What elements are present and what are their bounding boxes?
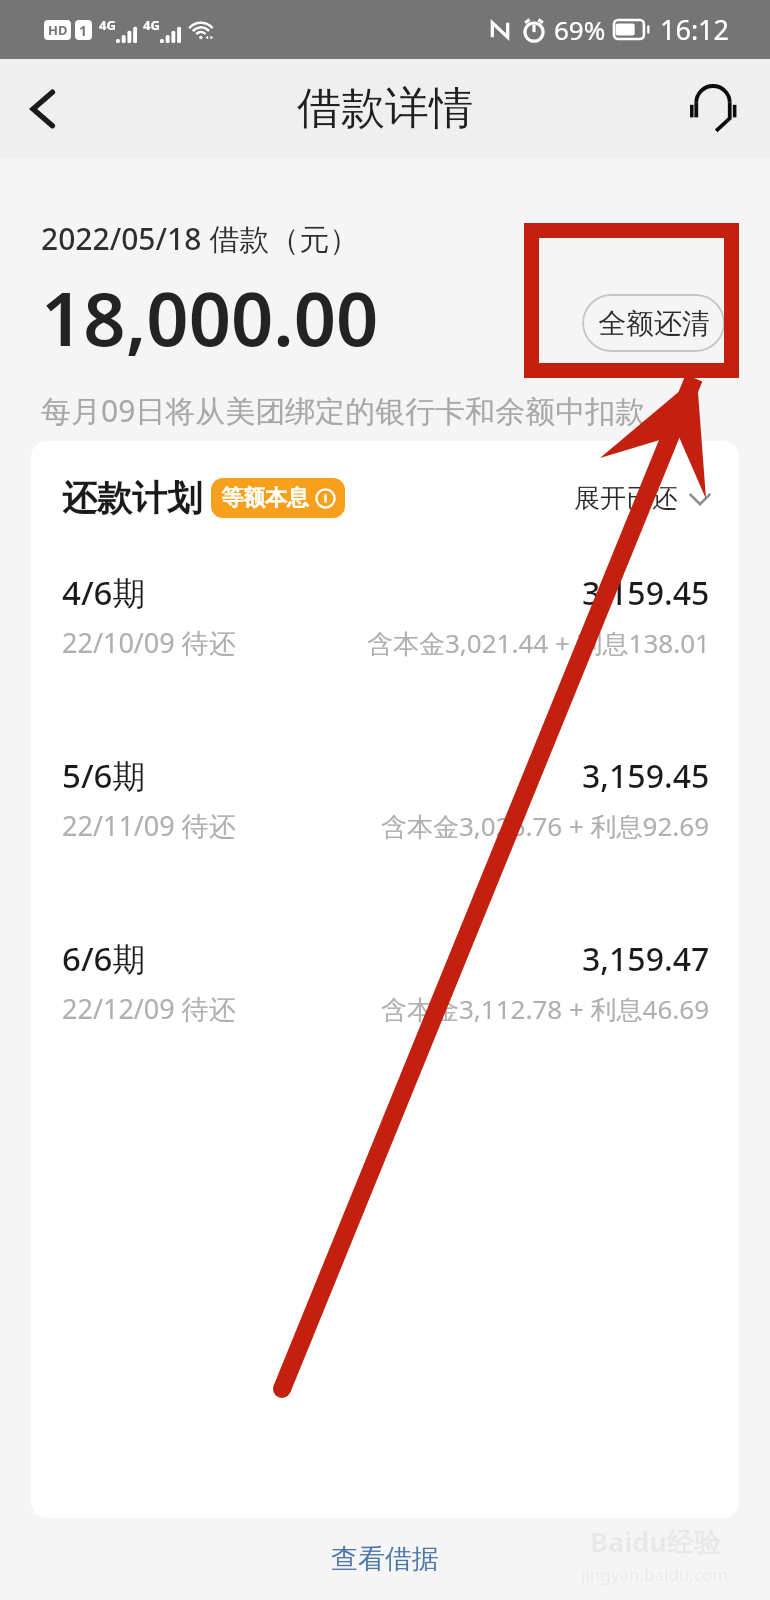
staticText: 3,159.47 xyxy=(582,937,710,981)
staticText: Baidu经验 xyxy=(590,1523,721,1560)
staticText: 69% xyxy=(554,12,606,47)
staticText: 还款计划 xyxy=(62,476,202,520)
button[interactable]: 6/6期 xyxy=(31,936,739,1027)
staticText: 查看借据 xyxy=(331,1542,439,1576)
staticText: 4G xyxy=(99,16,116,34)
staticText: 6/6期 xyxy=(62,936,146,981)
button[interactable]: Customer service xyxy=(673,69,753,149)
button[interactable]: 查看借据 xyxy=(309,1532,461,1586)
button[interactable]: 5/6期 xyxy=(31,753,739,844)
staticText: 含本金3,112.78 + 利息46.69 xyxy=(381,991,710,1027)
staticText: 22/11/09 待还 xyxy=(62,807,236,844)
button[interactable]: 全额还清 xyxy=(582,294,725,352)
staticText: 每月09日将从美团绑定的银行卡和余额中扣款 xyxy=(41,390,646,431)
staticText: 含本金3,026.76 + 利息92.69 xyxy=(381,808,710,844)
staticText: 4G xyxy=(143,16,160,34)
staticText: 16:12 xyxy=(660,11,730,48)
staticText: jingyan.baidu.com xyxy=(581,1563,729,1586)
button[interactable]: Back xyxy=(0,65,88,153)
staticText: 全额还清 xyxy=(598,306,710,341)
staticText: 3,159.45 xyxy=(582,754,710,798)
staticText: 3,159.45 xyxy=(582,571,710,615)
staticText: 展开已还 xyxy=(574,482,678,515)
staticText: 18,000.00 xyxy=(41,267,379,368)
staticText: 2022/05/18 借款（元） xyxy=(41,218,360,259)
button[interactable]: 4/6期 xyxy=(31,570,739,661)
staticText: 1 xyxy=(79,21,88,40)
staticText: 5/6期 xyxy=(62,753,146,798)
staticText: 22/12/09 待还 xyxy=(62,990,236,1027)
button[interactable]: 展开已还 xyxy=(574,482,710,515)
staticText: 借款详情 xyxy=(297,81,473,136)
staticText: 22/10/09 待还 xyxy=(62,624,236,661)
button[interactable]: 等额本息 xyxy=(211,478,345,518)
staticText: 4/6期 xyxy=(62,570,146,615)
staticText: HD xyxy=(48,21,68,39)
staticText: 等额本息 xyxy=(221,484,309,512)
staticText: 含本金3,021.44 + 利息138.01 xyxy=(367,625,710,661)
